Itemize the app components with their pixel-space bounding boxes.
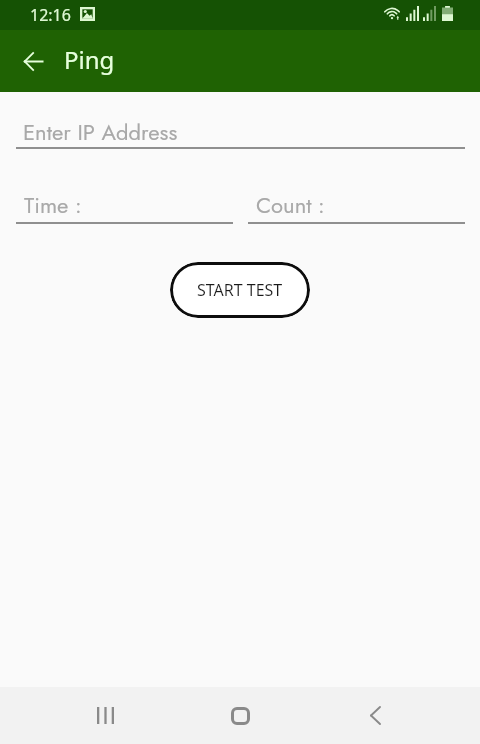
button[interactable]: Back [12, 40, 54, 82]
staticText: Ping [64, 43, 115, 76]
staticText: Time : [24, 189, 82, 221]
button[interactable]: Home [203, 687, 278, 744]
staticText: START TEST [197, 279, 283, 301]
staticText: 12:16 [30, 4, 71, 26]
staticText: Count : [256, 189, 325, 221]
button[interactable]: Recent apps [68, 687, 143, 744]
button[interactable]: Back [338, 687, 413, 744]
staticText: Enter IP Address [23, 116, 178, 148]
button[interactable]: START TEST [170, 262, 310, 318]
